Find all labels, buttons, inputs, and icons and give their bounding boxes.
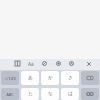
staticText: Aa (28, 61, 34, 67)
button[interactable]: ☆123 (1, 71, 19, 85)
button[interactable]: Backspace (81, 71, 99, 85)
staticText: ☆123 (4, 75, 16, 81)
button[interactable]: Keyboard layout (15, 61, 20, 66)
button[interactable]: Aa (27, 60, 34, 67)
button[interactable]: Accessibility (69, 61, 74, 66)
button[interactable]: Close keyboard (87, 62, 91, 66)
button[interactable]: な (41, 88, 59, 100)
staticText: か (48, 75, 53, 81)
staticText: た (28, 91, 33, 97)
button[interactable]: さ (61, 71, 79, 85)
button[interactable]: Mute (42, 61, 47, 66)
staticText: な (48, 91, 53, 97)
staticText: ABC (6, 92, 14, 97)
button[interactable]: た (21, 88, 39, 100)
button[interactable]: は (61, 88, 79, 100)
other: Symbols (86, 90, 94, 98)
staticText: は (68, 91, 73, 97)
button[interactable]: Add (56, 61, 61, 66)
staticText: あ (28, 75, 33, 81)
button[interactable]: か (41, 71, 59, 85)
button[interactable]: あ (21, 71, 39, 85)
button[interactable]: Symbols (81, 88, 99, 100)
staticText: さ (68, 75, 73, 81)
button[interactable]: ABC (1, 88, 19, 100)
other: Backspace (86, 74, 94, 82)
